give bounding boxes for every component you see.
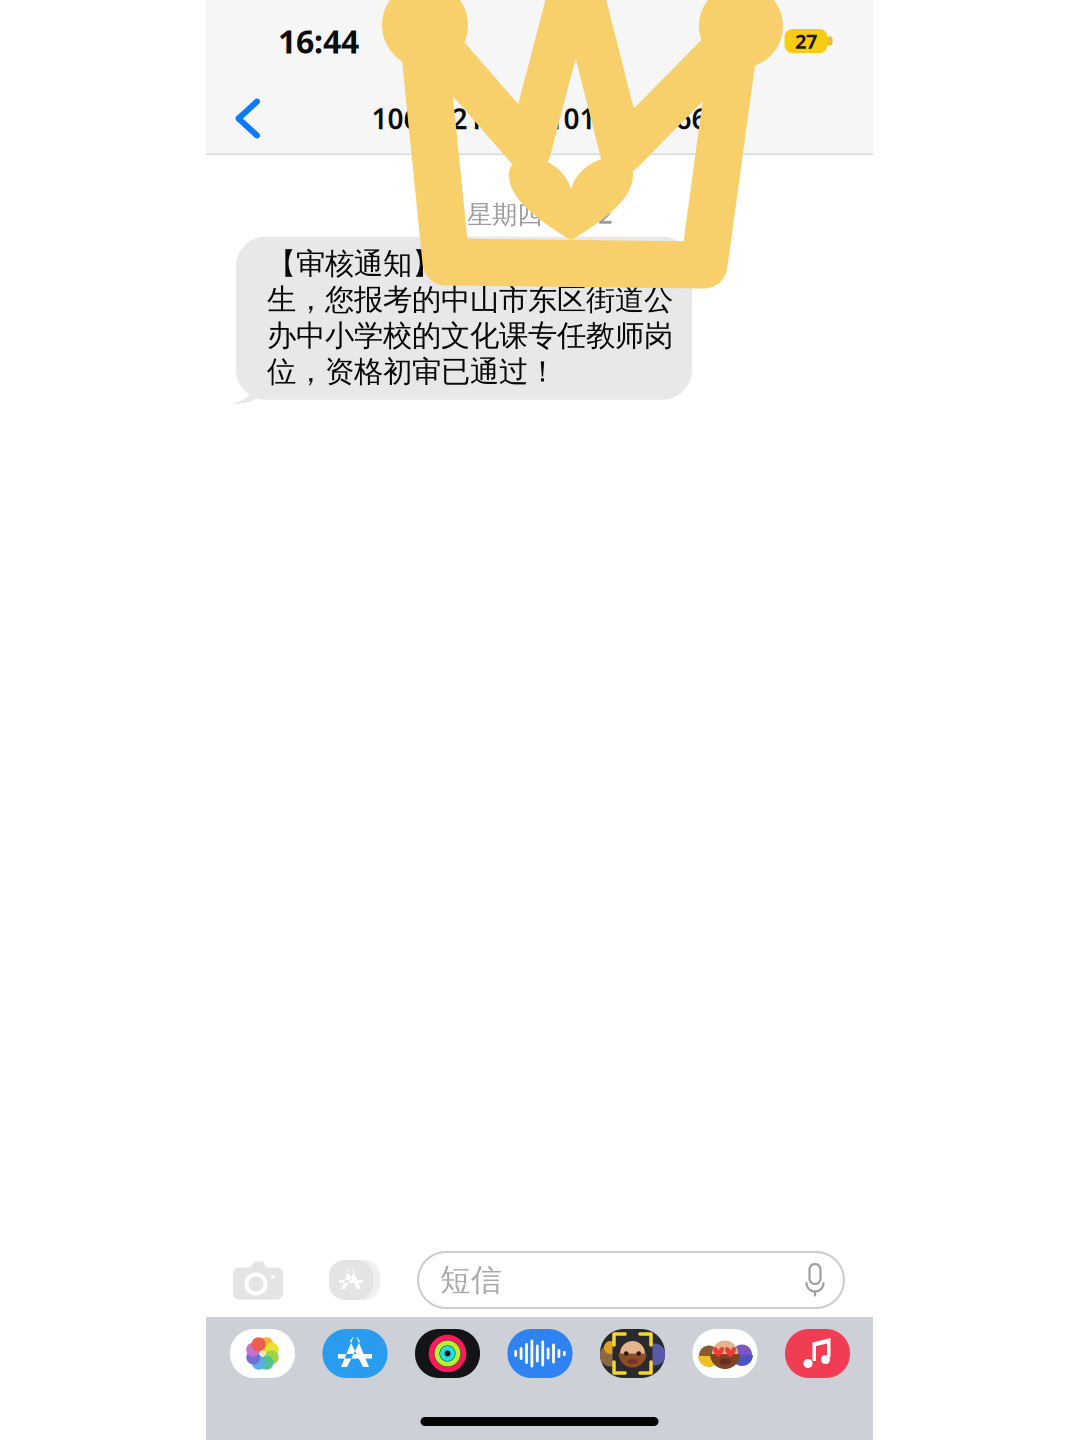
button[interactable]: Memoji Stickers (692, 1329, 757, 1378)
button[interactable]: Camera (232, 1259, 284, 1300)
staticText: 27 (795, 28, 817, 54)
button[interactable]: Apps (325, 1259, 377, 1300)
button[interactable]: Photos (230, 1329, 295, 1378)
button[interactable]: Audio Messages (507, 1329, 572, 1378)
button[interactable]: Back (225, 84, 271, 152)
button[interactable]: Fitness (415, 1329, 480, 1378)
staticText: 【审核通知】 生，您报考的中山市东区街道公 办中小学校的文化课专任教师岗 位，资… (267, 246, 673, 390)
button[interactable]: Music (785, 1329, 850, 1378)
staticText: 16:44 (278, 20, 359, 62)
button[interactable]: 106902150241011558866 (357, 92, 721, 145)
button[interactable]: Memoji (600, 1329, 665, 1378)
staticText: 106902150241011558866 (371, 100, 707, 137)
staticText: 短信 (440, 1261, 502, 1299)
staticText: 星期四 16:32 (467, 197, 612, 231)
button[interactable]: App Store (322, 1329, 387, 1378)
button[interactable]: 短信 (418, 1252, 844, 1308)
